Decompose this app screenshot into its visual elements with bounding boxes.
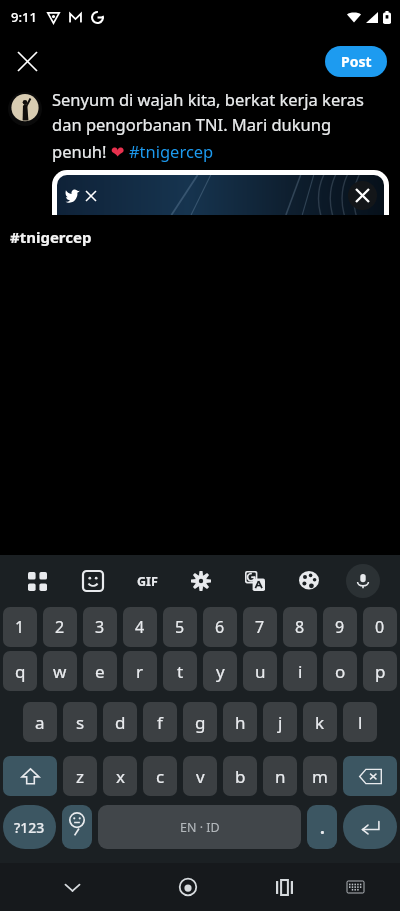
button[interactable]: Switch keyboard	[332, 864, 378, 910]
staticText: .	[320, 816, 325, 839]
staticText: k	[315, 711, 325, 734]
button[interactable]: Remove media	[348, 181, 377, 210]
staticText: 5	[175, 616, 185, 638]
staticText: ?123	[14, 818, 45, 837]
button[interactable]: Hide keyboard	[49, 864, 95, 910]
button[interactable]: Translate	[228, 555, 282, 607]
staticText: c	[156, 765, 165, 788]
staticText: 8	[295, 616, 305, 638]
button[interactable]: 4	[123, 607, 157, 647]
staticText: q	[15, 660, 26, 683]
button[interactable]: Settings	[174, 555, 228, 607]
button[interactable]: q	[3, 651, 37, 691]
staticText: u	[255, 660, 266, 683]
button[interactable]: GIF	[120, 555, 174, 607]
button[interactable]: Shift	[3, 756, 57, 796]
button[interactable]: x	[103, 756, 137, 796]
staticText: z	[76, 765, 84, 788]
staticText: 6	[215, 616, 225, 638]
button[interactable]: 7	[243, 607, 277, 647]
button[interactable]: h	[223, 702, 257, 742]
button[interactable]: r	[123, 651, 157, 691]
staticText: n	[275, 765, 286, 788]
button[interactable]: i	[283, 651, 317, 691]
button[interactable]: u	[243, 651, 277, 691]
button[interactable]: Voice input	[336, 555, 390, 607]
staticText: h	[235, 711, 246, 734]
staticText: x	[116, 765, 125, 788]
button[interactable]: 9	[323, 607, 357, 647]
staticText: b	[235, 765, 246, 788]
button[interactable]: 6	[203, 607, 237, 647]
staticText: v	[196, 765, 205, 788]
button[interactable]: z	[63, 756, 97, 796]
staticText: p	[375, 660, 386, 683]
button[interactable]: 1	[3, 607, 37, 647]
button[interactable]: l	[343, 702, 377, 742]
button[interactable]: Home	[165, 864, 211, 910]
button[interactable]: 3	[83, 607, 117, 647]
staticText: l	[358, 711, 363, 734]
staticText: EN · ID	[180, 819, 220, 836]
staticText: m	[312, 765, 328, 788]
staticText: Senyum di wajah kita, berkat kerja keras…	[52, 88, 389, 163]
button[interactable]: 0	[363, 607, 397, 647]
button[interactable]: p	[363, 651, 397, 691]
staticText: o	[335, 660, 346, 683]
button[interactable]: Post	[325, 46, 387, 77]
button[interactable]: n	[263, 756, 297, 796]
button[interactable]: Close	[7, 41, 47, 81]
button[interactable]: 2	[43, 607, 77, 647]
button[interactable]: w	[43, 651, 77, 691]
button[interactable]: o	[323, 651, 357, 691]
button[interactable]: Apps	[10, 555, 65, 607]
button[interactable]: Stickers	[65, 555, 120, 607]
staticText: #tnigercep	[10, 227, 92, 247]
button[interactable]: k	[303, 702, 337, 742]
button[interactable]: Emoji	[62, 805, 92, 849]
button[interactable]: 5	[163, 607, 197, 647]
button[interactable]: c	[143, 756, 177, 796]
button[interactable]: g	[183, 702, 217, 742]
button[interactable]: v	[183, 756, 217, 796]
staticText: Post	[341, 52, 372, 71]
staticText: 2	[55, 616, 65, 638]
button[interactable]: #tnigercep	[0, 226, 400, 251]
button[interactable]: Backspace	[343, 756, 397, 796]
staticText: s	[76, 711, 85, 734]
button[interactable]: j	[263, 702, 297, 742]
button[interactable]: e	[83, 651, 117, 691]
staticText: GIF	[137, 573, 158, 590]
staticText: d	[115, 711, 126, 734]
button[interactable]: Themes	[282, 555, 336, 607]
button[interactable]: .	[307, 805, 337, 849]
button[interactable]: Profile picture	[8, 92, 42, 126]
staticText: g	[195, 711, 206, 734]
button[interactable]: f	[143, 702, 177, 742]
staticText: 3	[95, 616, 105, 638]
staticText: 4	[135, 616, 145, 638]
button[interactable]: a	[23, 702, 57, 742]
button[interactable]: d	[103, 702, 137, 742]
staticText: 1	[15, 616, 25, 638]
button[interactable]: Symbols	[3, 805, 56, 849]
button[interactable]: EN · ID	[98, 805, 301, 849]
staticText: y	[216, 660, 225, 683]
staticText: f	[157, 711, 163, 734]
staticText: 0	[375, 616, 385, 638]
button[interactable]: Recents	[261, 864, 307, 910]
button[interactable]: Enter	[343, 805, 397, 849]
button[interactable]: t	[163, 651, 197, 691]
staticText: t	[177, 660, 184, 683]
staticText: r	[136, 660, 144, 683]
button[interactable]: m	[303, 756, 337, 796]
button[interactable]: b	[223, 756, 257, 796]
button[interactable]: s	[63, 702, 97, 742]
staticText: 9	[335, 616, 345, 638]
staticText: w	[53, 660, 67, 683]
staticText: 7	[255, 616, 265, 638]
button[interactable]: 8	[283, 607, 317, 647]
button[interactable]: y	[203, 651, 237, 691]
staticText: j	[278, 711, 283, 734]
staticText: 9:11	[11, 8, 37, 26]
